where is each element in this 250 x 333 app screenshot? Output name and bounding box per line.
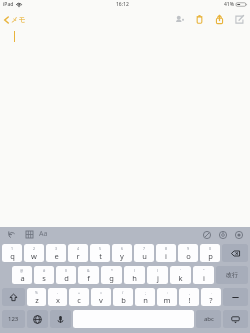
button[interactable]: Key [223,288,248,306]
button[interactable]: 0 [200,244,220,262]
button[interactable]: . [201,288,221,306]
staticText: Aa [39,229,48,239]
button[interactable]: 4 [68,244,88,262]
button[interactable]: Add people [173,13,186,26]
staticText: 41% [224,1,234,8]
staticText: 123 [8,315,19,323]
staticText: - [57,290,59,295]
button[interactable]: 1 [2,244,22,262]
staticText: 1 [11,246,14,251]
button[interactable]: : [157,288,177,306]
staticText: z [35,295,39,305]
button[interactable]: Draw [233,229,244,240]
button[interactable]: / [113,288,133,306]
staticText: = [100,290,103,295]
button[interactable]: 改行 [216,266,248,284]
staticText: 16:12 [116,1,129,8]
staticText: j [157,273,159,283]
button[interactable]: - [48,288,67,306]
staticText: i [203,273,205,283]
staticText: 3 [55,246,58,251]
staticText: i [165,251,167,261]
staticText: * [111,268,113,273]
staticText: ; [145,290,146,295]
button[interactable]: Key [223,310,248,328]
button[interactable]: 3 [46,244,66,262]
button[interactable]: ' [170,266,191,284]
staticText: a [20,273,25,283]
staticText: ( [134,268,136,273]
button[interactable]: Key [2,288,25,306]
button[interactable]: + [69,288,89,306]
staticText: 5 [99,246,102,251]
button[interactable]: 8 [156,244,176,262]
staticText: 0 [209,246,212,251]
staticText: 4 [77,246,80,251]
staticText: m [163,295,171,305]
staticText: メモ [11,15,26,24]
staticText: s [42,273,46,283]
button[interactable]: Checklist [201,229,212,240]
button[interactable]: Undo [6,229,17,240]
staticText: o [186,251,191,261]
button[interactable]: メモ [0,13,32,26]
staticText: y [120,251,124,261]
staticText: k [178,273,183,283]
button[interactable]: Delete [193,13,206,26]
staticText: g [109,273,114,283]
button[interactable]: # [34,266,54,284]
button[interactable]: , [179,288,199,306]
staticText: 2 [33,246,36,251]
button[interactable]: Key [50,310,71,328]
button[interactable]: Share [213,13,226,26]
button[interactable]: & [78,266,99,284]
button[interactable]: 2 [24,244,44,262]
button[interactable]: ; [135,288,155,306]
button[interactable]: Key [27,310,48,328]
button[interactable]: " [193,266,214,284]
button[interactable]: 5 [90,244,110,262]
staticText: : [167,290,168,295]
button[interactable]: @ [12,266,32,284]
button[interactable]: % [27,288,46,306]
button[interactable]: ) [147,266,168,284]
button[interactable]: * [101,266,122,284]
staticText: w [31,251,37,261]
staticText: u [142,251,147,261]
staticText: h [132,273,137,283]
staticText: $ [65,268,68,273]
button[interactable]: Key [222,244,248,262]
button[interactable]: New note [233,13,246,26]
button[interactable]: Aa [38,229,49,239]
staticText: c [77,295,81,305]
button[interactable]: 123 [2,310,25,328]
staticText: 9 [187,246,190,251]
staticText: d [64,273,69,283]
button[interactable]: 7 [134,244,154,262]
staticText: + [78,290,81,295]
button[interactable]: ( [124,266,145,284]
staticText: r [76,251,80,261]
staticText: f [87,273,90,283]
button[interactable]: $ [56,266,76,284]
staticText: e [54,251,59,261]
staticText: " [203,268,205,273]
staticText: ! [188,295,191,305]
staticText: n [143,295,148,305]
staticText: ) [157,268,159,273]
staticText: , [189,290,190,295]
staticText: ' [180,268,181,273]
button[interactable]: Camera [217,229,228,240]
button[interactable]: abc [196,310,221,328]
button[interactable]: 6 [112,244,132,262]
staticText: t [99,251,102,261]
staticText: 8 [165,246,168,251]
staticText: . [211,290,212,295]
staticText: b [121,295,126,305]
button[interactable]: = [91,288,111,306]
button[interactable]: Table [24,229,35,240]
button[interactable]: 9 [178,244,198,262]
